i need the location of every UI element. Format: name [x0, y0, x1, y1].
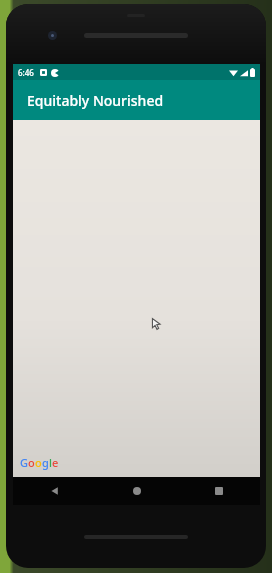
- staticText: l: [49, 455, 52, 470]
- staticText: Equitably Nourished: [27, 91, 164, 110]
- staticText: e: [52, 455, 59, 470]
- staticText: 6:46: [18, 67, 34, 78]
- staticText: G: [20, 455, 28, 470]
- staticText: o: [35, 455, 42, 470]
- staticText: o: [28, 455, 35, 470]
- button[interactable]: Google: [20, 455, 59, 470]
- button[interactable]: Home: [96, 477, 178, 505]
- button[interactable]: Equitably Nourished: [13, 80, 260, 120]
- staticText: g: [42, 455, 49, 470]
- button[interactable]: Back: [13, 477, 96, 505]
- button[interactable]: Recent apps: [178, 477, 260, 505]
